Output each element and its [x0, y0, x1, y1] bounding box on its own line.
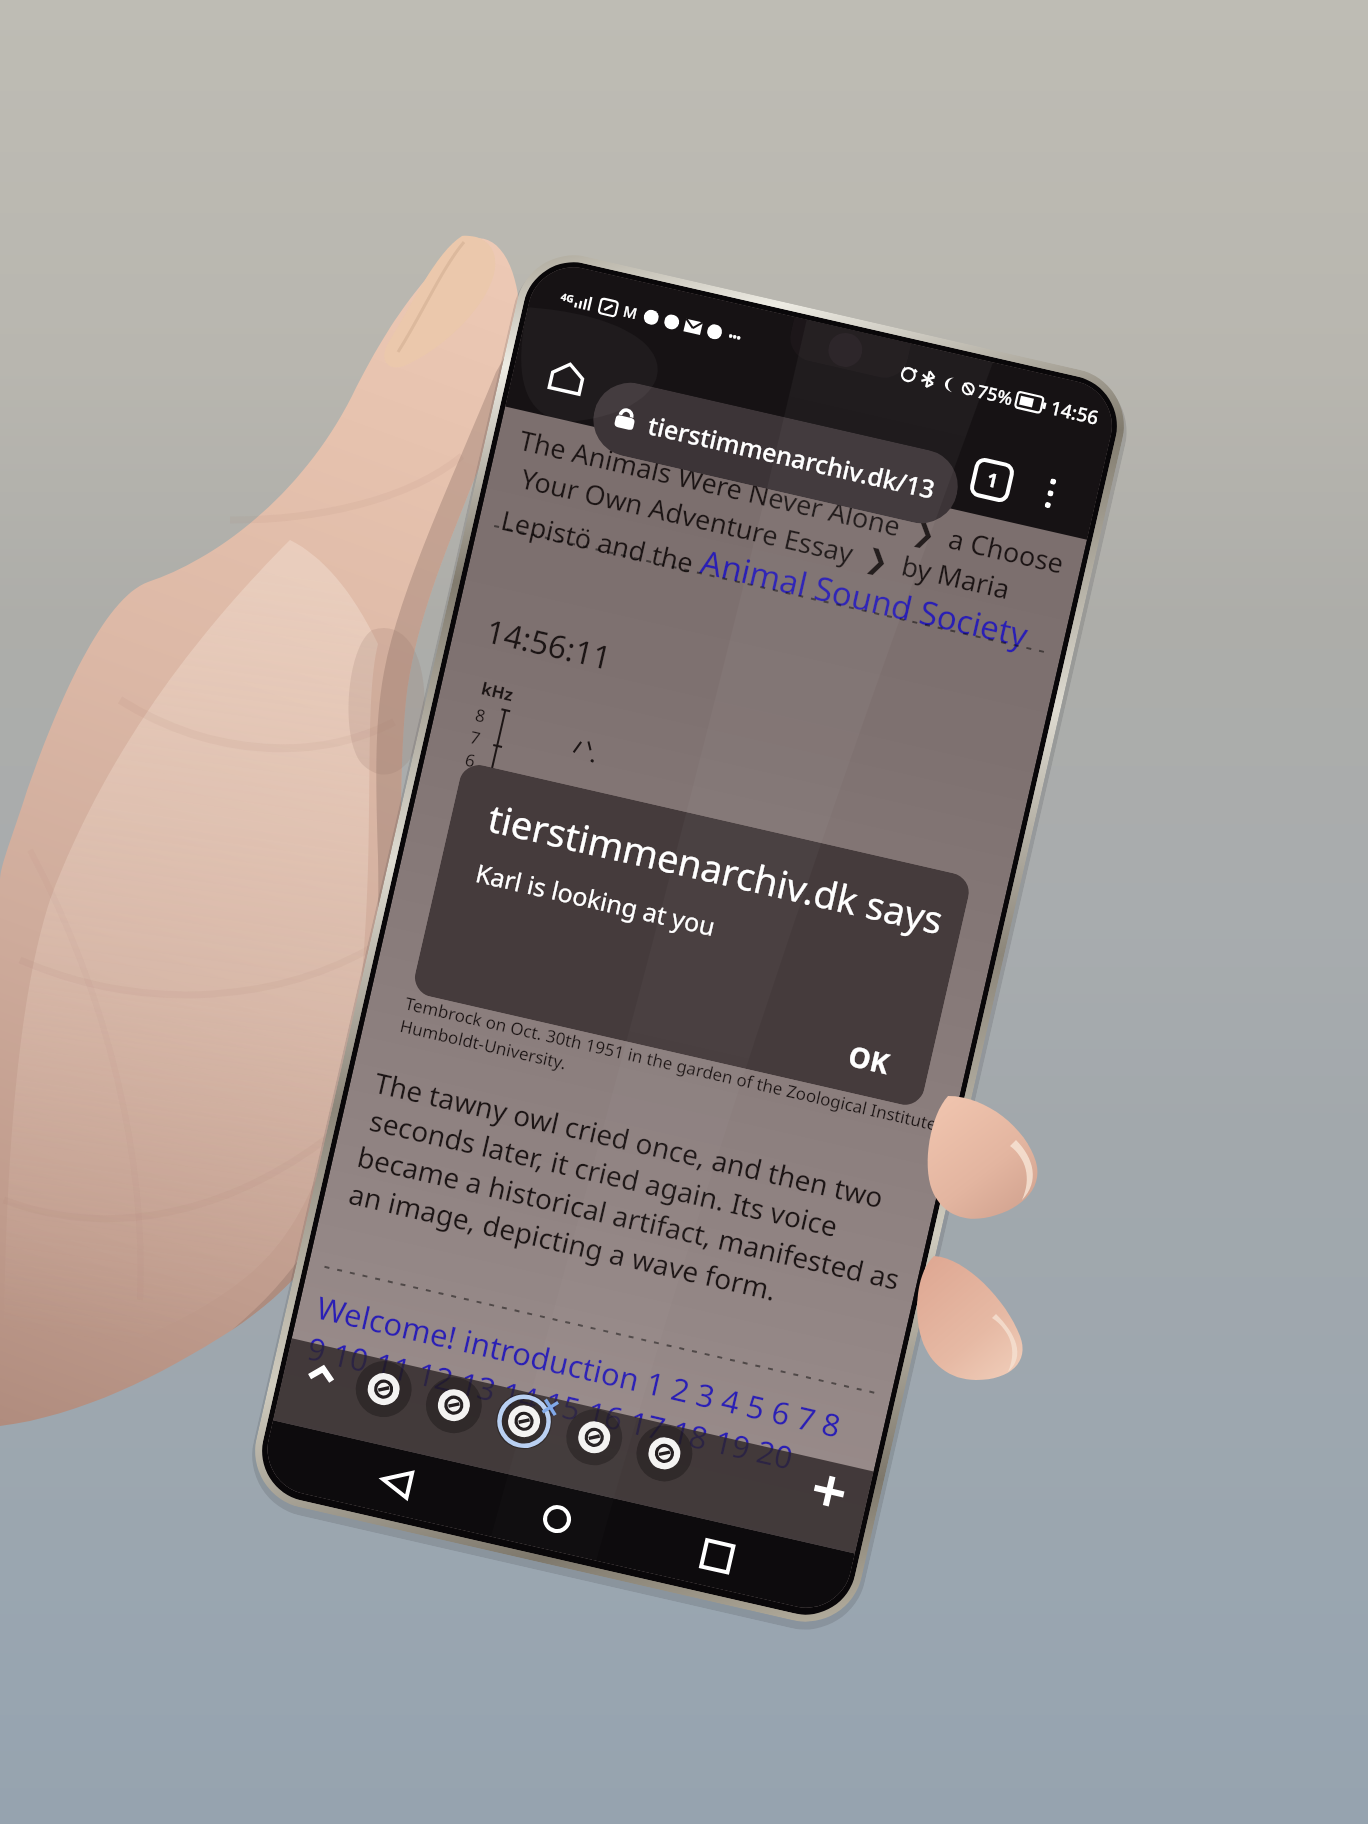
button[interactable]: Audio tab — [349, 1354, 418, 1424]
staticText: 75% — [975, 379, 1015, 411]
button[interactable]: Audio tab — [489, 1386, 559, 1456]
button[interactable]: New tab — [797, 1459, 861, 1523]
staticText: kHz — [479, 677, 515, 706]
staticText: M — [621, 301, 639, 323]
button[interactable]: OK — [827, 1023, 911, 1095]
button[interactable]: Tabs — [967, 455, 1017, 505]
button[interactable]: More options — [1025, 468, 1076, 518]
staticText: Karl is looking at you — [473, 855, 719, 943]
button[interactable]: Collapse tab strip — [294, 1347, 349, 1402]
button[interactable]: Home — [520, 1482, 594, 1556]
button[interactable]: Animal Sound Society — [697, 539, 1032, 657]
button[interactable]: Welcome! introduction 1 2 3 4 5 6 7 8 — [313, 1286, 846, 1447]
staticText: 8 — [473, 703, 488, 728]
button[interactable]: Audio tab — [630, 1419, 699, 1488]
staticText: 14:56:11 — [482, 608, 615, 680]
staticText: Lepistö and the — [498, 501, 705, 583]
staticText: Humboldt-University. — [398, 1014, 569, 1074]
staticText: ••• — [727, 328, 743, 345]
button[interactable]: 9 10 11 12 13 14 15 16 17 18 19 20 — [303, 1327, 797, 1479]
staticText: Animal Sound Society — [697, 539, 1032, 657]
staticText: The Animals Were Never Alone ❯ a Choose — [516, 421, 1068, 582]
button[interactable]: Home — [541, 351, 593, 404]
staticText: seconds later, it cried again. Its voice — [366, 1101, 842, 1245]
staticText: 6 — [463, 748, 478, 772]
staticText: The tawny owl cried once, and then two — [371, 1063, 887, 1216]
staticText: tierstimmenarchiv.dk says — [483, 791, 948, 945]
staticText: became a historical artifact, manifested… — [354, 1137, 903, 1298]
button[interactable]: Back — [359, 1445, 433, 1519]
button[interactable]: Audio tab — [419, 1370, 489, 1440]
staticText: 7 — [468, 725, 483, 750]
button[interactable]: Audio tab — [559, 1403, 629, 1472]
staticText: an image, depicting a wave form. — [345, 1174, 781, 1309]
staticText: Your Own Adventure Essay ❯ by Maria — [518, 459, 1014, 607]
staticText: Welcome! introduction 1 2 3 4 5 6 7 8 — [313, 1286, 846, 1447]
staticText: 1 — [984, 466, 1001, 494]
staticText: 9 10 11 12 13 14 15 16 17 18 19 20 — [303, 1327, 797, 1479]
staticText: Tembrock on Oct. 30th 1951 in the garden… — [403, 991, 955, 1139]
button[interactable]: Recents — [680, 1519, 754, 1593]
button[interactable]: tierstimmenarchiv.dk/13 — [586, 375, 965, 531]
staticText: 14:56 — [1048, 395, 1101, 431]
staticText: tierstimmenarchiv.dk/13 — [645, 407, 938, 506]
staticText: OK — [845, 1036, 893, 1082]
staticText: 4G — [560, 289, 575, 306]
